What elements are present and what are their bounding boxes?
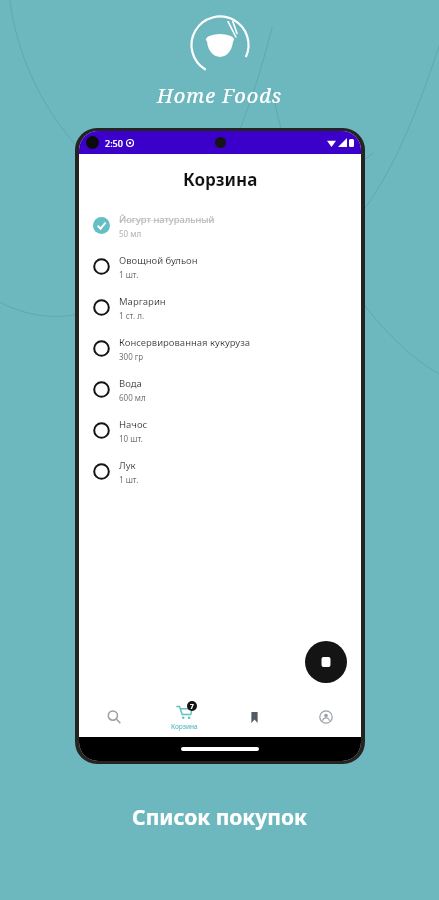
staticText: Корзина	[183, 168, 258, 191]
button[interactable]: Закладки	[219, 697, 290, 737]
button[interactable]: Вода	[79, 369, 361, 410]
staticText: 300 гр	[119, 351, 144, 362]
button[interactable]: Лук	[79, 451, 361, 492]
button[interactable]: Начос	[79, 410, 361, 451]
staticText: Йогурт натуральный	[119, 213, 215, 226]
staticText: 1 шт.	[119, 474, 139, 485]
button[interactable]: Маргарин	[79, 287, 361, 328]
staticText: 2:50	[105, 137, 123, 149]
staticText: Вода	[119, 377, 142, 390]
button[interactable]: Профиль	[290, 697, 361, 737]
button[interactable]: Консервированная кукуруза	[79, 328, 361, 369]
staticText: Начос	[119, 418, 148, 431]
staticText: Лук	[119, 459, 136, 472]
staticText: 600 мл	[119, 392, 146, 403]
staticText: 50 мл	[119, 228, 142, 239]
button[interactable]: 7	[149, 697, 219, 737]
staticText: 7	[190, 702, 194, 711]
button[interactable]: Йогурт натуральный	[79, 205, 361, 246]
staticText: 1 ст. л.	[119, 310, 145, 321]
staticText: Home Foods	[157, 82, 283, 109]
button[interactable]: Поиск	[79, 697, 149, 737]
staticText: Маргарин	[119, 295, 166, 308]
staticText: 10 шт.	[119, 433, 143, 444]
button[interactable]: Овощной бульон	[79, 246, 361, 287]
staticText: Консервированная кукуруза	[119, 336, 251, 349]
button[interactable]: Очистить корзину	[305, 641, 347, 683]
staticText: 1 шт.	[119, 269, 139, 280]
staticText: Корзина	[171, 722, 198, 731]
staticText: Овощной бульон	[119, 254, 198, 267]
staticText: Список покупок	[132, 803, 307, 832]
